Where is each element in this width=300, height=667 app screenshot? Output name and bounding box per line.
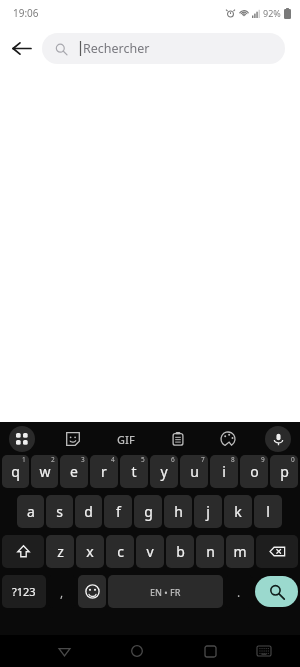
button[interactable]: j xyxy=(194,495,222,528)
staticText: v xyxy=(146,542,154,561)
button[interactable]: Emoji xyxy=(78,575,106,608)
button[interactable]: Back xyxy=(49,636,79,666)
staticText: r xyxy=(101,462,107,481)
button[interactable]: Hide keyboard xyxy=(249,636,279,666)
staticText: 1 xyxy=(22,455,26,464)
button[interactable]: , xyxy=(48,575,76,608)
staticText: 19:06 xyxy=(13,6,39,20)
staticText: d xyxy=(84,502,93,521)
button[interactable]: Clipboard xyxy=(165,426,191,452)
staticText: y xyxy=(160,462,168,481)
staticText: p xyxy=(280,462,289,481)
button[interactable]: h xyxy=(164,495,192,528)
button[interactable]: w xyxy=(31,455,58,488)
staticText: 92% xyxy=(263,7,281,19)
button[interactable]: x xyxy=(76,535,104,568)
staticText: x xyxy=(86,542,94,561)
button[interactable]: s xyxy=(46,495,73,528)
staticText: l xyxy=(266,502,270,521)
button[interactable]: n xyxy=(196,535,224,568)
staticText: EN • FR xyxy=(150,586,181,598)
button[interactable]: Search xyxy=(255,576,298,607)
staticText: n xyxy=(206,542,215,561)
staticText: ?123 xyxy=(12,584,36,599)
button[interactable]: f xyxy=(104,495,132,528)
button[interactable]: g xyxy=(134,495,162,528)
staticText: 7 xyxy=(201,455,205,464)
staticText: 3 xyxy=(81,455,85,464)
staticText: b xyxy=(176,542,185,561)
button[interactable]: e xyxy=(60,455,88,488)
button[interactable]: EN • FR xyxy=(108,575,223,608)
button[interactable]: Theme xyxy=(215,426,241,452)
staticText: g xyxy=(144,502,153,521)
button[interactable]: Rechercher xyxy=(42,33,285,64)
button[interactable]: ?123 xyxy=(2,575,46,608)
button[interactable]: Shift xyxy=(2,535,44,568)
button[interactable]: k xyxy=(224,495,252,528)
button[interactable]: t xyxy=(120,455,148,488)
staticText: c xyxy=(117,542,124,561)
button[interactable]: p xyxy=(270,455,298,488)
button[interactable]: q xyxy=(2,455,29,488)
staticText: Rechercher xyxy=(83,40,150,57)
button[interactable]: u xyxy=(180,455,208,488)
staticText: s xyxy=(56,502,63,521)
staticText: h xyxy=(174,502,183,521)
staticText: e xyxy=(70,462,78,481)
button[interactable]: a xyxy=(17,495,44,528)
staticText: f xyxy=(116,502,121,521)
staticText: a xyxy=(27,502,35,521)
staticText: u xyxy=(190,462,199,481)
button[interactable]: . xyxy=(225,575,253,608)
staticText: t xyxy=(131,462,137,481)
staticText: i xyxy=(222,462,226,481)
staticText: m xyxy=(233,542,247,561)
button[interactable]: Voice input xyxy=(265,426,291,452)
button[interactable]: l xyxy=(254,495,282,528)
staticText: GIF xyxy=(117,432,135,447)
button[interactable]: Back xyxy=(0,27,42,69)
staticText: 0 xyxy=(291,455,295,464)
button[interactable]: m xyxy=(226,535,254,568)
staticText: 8 xyxy=(231,455,235,464)
button[interactable]: y xyxy=(150,455,178,488)
staticText: , xyxy=(60,584,64,600)
button[interactable]: v xyxy=(136,535,164,568)
staticText: z xyxy=(57,542,64,561)
staticText: 6 xyxy=(171,455,175,464)
button[interactable]: r xyxy=(90,455,118,488)
button[interactable]: Recents xyxy=(195,636,225,666)
button[interactable]: d xyxy=(75,495,102,528)
button[interactable]: GIF xyxy=(111,424,141,454)
staticText: 4 xyxy=(111,455,115,464)
button[interactable]: i xyxy=(210,455,238,488)
staticText: q xyxy=(11,462,20,481)
staticText: o xyxy=(250,462,259,481)
button[interactable]: c xyxy=(106,535,134,568)
staticText: j xyxy=(206,502,210,521)
button[interactable]: Stickers xyxy=(60,426,86,452)
button[interactable]: o xyxy=(240,455,268,488)
button[interactable]: b xyxy=(166,535,194,568)
staticText: 9 xyxy=(261,455,265,464)
staticText: k xyxy=(234,502,242,521)
staticText: 5 xyxy=(141,455,145,464)
staticText: w xyxy=(39,462,51,481)
button[interactable]: z xyxy=(46,535,74,568)
button[interactable]: Home xyxy=(122,636,152,666)
staticText: . xyxy=(237,584,241,600)
button[interactable]: Apps xyxy=(9,426,35,452)
button[interactable]: Backspace xyxy=(256,535,298,568)
staticText: 2 xyxy=(51,455,55,464)
